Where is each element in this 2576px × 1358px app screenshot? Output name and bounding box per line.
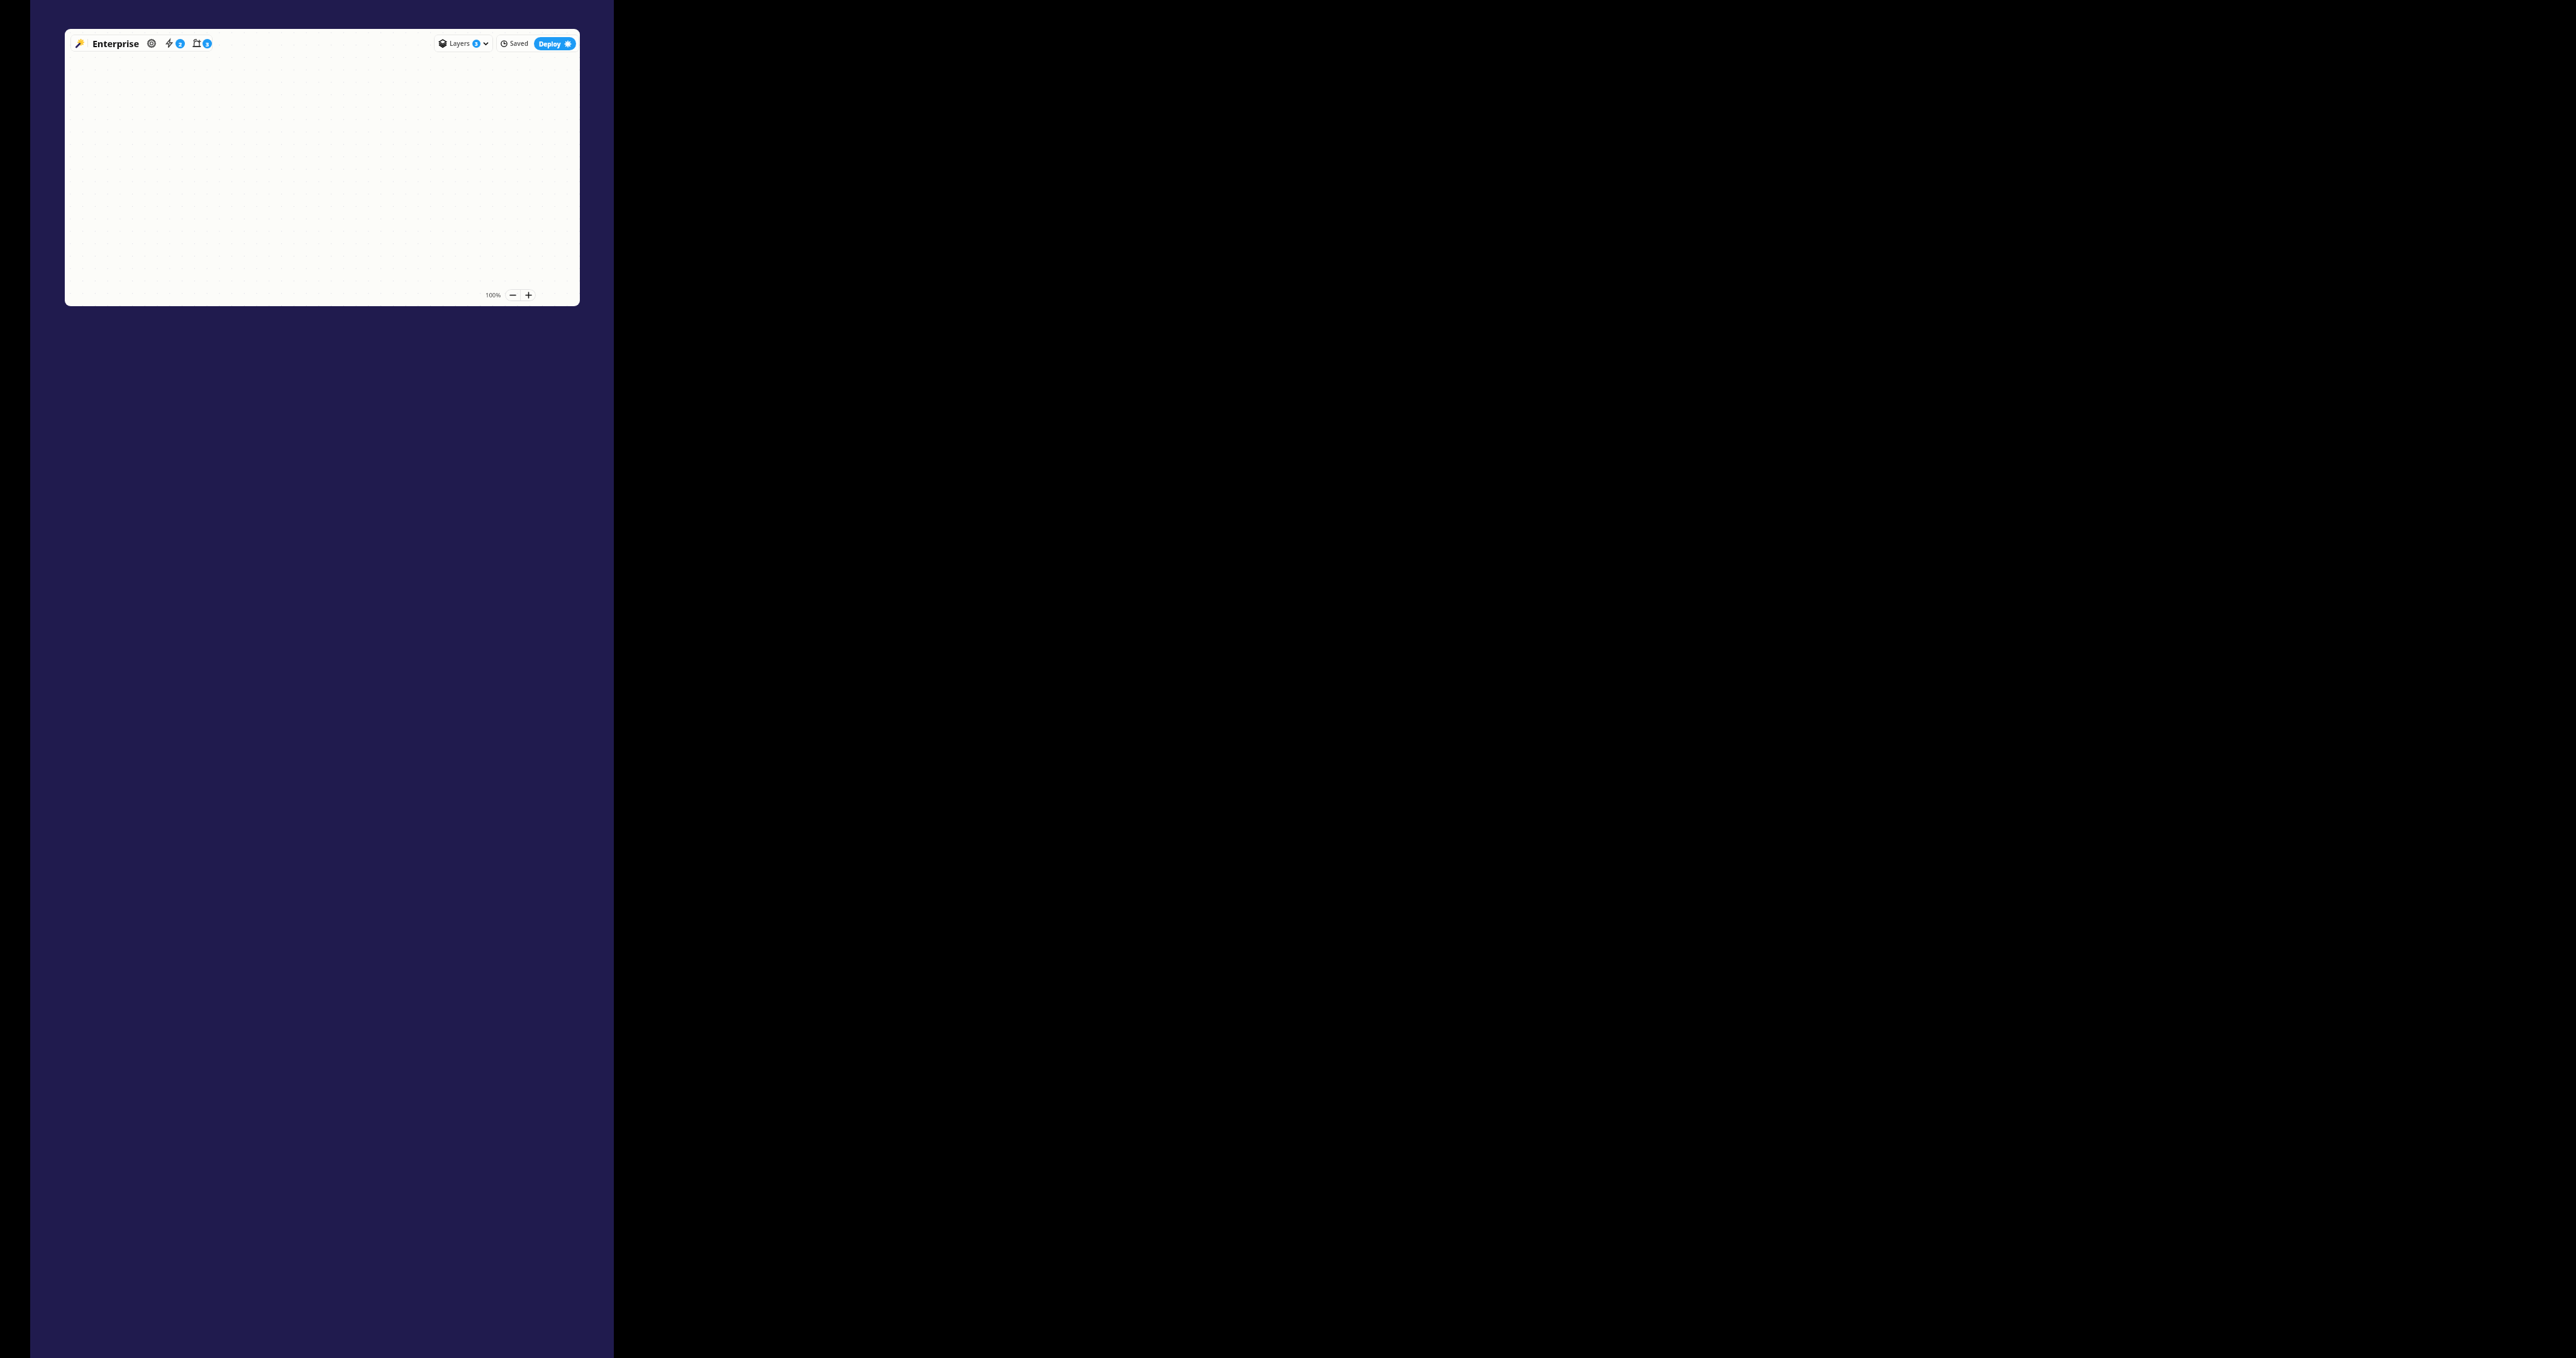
- button[interactable]: 2: [162, 37, 186, 50]
- staticText: Saved: [510, 39, 528, 48]
- button[interactable]: Zoom out: [505, 289, 520, 301]
- button[interactable]: 3: [189, 37, 213, 50]
- staticText: Layers: [450, 39, 470, 48]
- button[interactable]: Enterprise: [92, 37, 140, 50]
- staticText: 2: [179, 40, 182, 48]
- button[interactable]: Layers: [434, 35, 493, 52]
- button[interactable]: Settings: [145, 36, 158, 50]
- button[interactable]: Magic wand: [73, 37, 86, 50]
- staticText: 3: [206, 40, 209, 48]
- staticText: Deploy: [539, 40, 561, 48]
- staticText: 100%: [486, 291, 501, 299]
- button[interactable]: Zoom in: [521, 289, 536, 301]
- button[interactable]: Deploy: [534, 37, 576, 50]
- button[interactable]: Saved: [499, 39, 530, 48]
- staticText: 3: [475, 40, 478, 47]
